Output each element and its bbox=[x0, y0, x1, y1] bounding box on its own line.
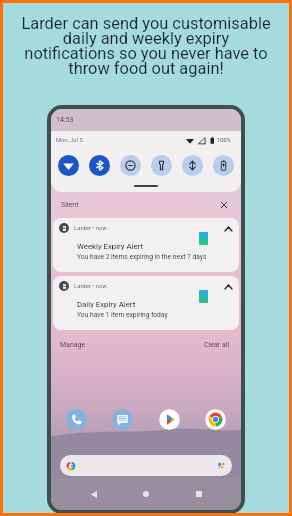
button[interactable]: Chrome bbox=[205, 409, 226, 430]
staticText: Larder • now bbox=[74, 283, 107, 290]
button[interactable]: Collapse notification bbox=[223, 281, 234, 292]
button[interactable]: Larder • now bbox=[53, 276, 239, 330]
button[interactable]: Home bbox=[136, 484, 156, 504]
staticText: You have 2 items expiring in the next 7 … bbox=[77, 253, 207, 261]
staticText: Larder can send you customisable daily a… bbox=[0, 14, 292, 78]
button[interactable]: Collapse notification bbox=[223, 223, 234, 234]
staticText: 14:53 bbox=[56, 116, 74, 124]
staticText: Mon, Jul 5 bbox=[56, 137, 83, 144]
staticText: Manage bbox=[60, 341, 86, 349]
button[interactable]: Search bbox=[60, 455, 232, 476]
staticText: Silent bbox=[61, 201, 79, 209]
staticText: 100% bbox=[217, 137, 232, 144]
button[interactable]: Flashlight bbox=[151, 155, 172, 176]
staticText: You have 1 item expiring today bbox=[77, 311, 168, 319]
button[interactable]: Do not disturb bbox=[120, 155, 141, 176]
button[interactable]: Bluetooth bbox=[89, 155, 110, 176]
button[interactable]: Dismiss silent notifications bbox=[218, 199, 229, 210]
button[interactable]: Auto rotate bbox=[182, 155, 203, 176]
button[interactable]: Larder • now bbox=[53, 218, 239, 272]
button[interactable]: Recent apps bbox=[189, 484, 209, 504]
button[interactable]: Messages bbox=[112, 409, 133, 430]
button[interactable]: Battery saver bbox=[213, 155, 234, 176]
button[interactable]: Wi-Fi bbox=[58, 155, 79, 176]
staticText: Clear all bbox=[204, 341, 230, 349]
button[interactable]: Phone bbox=[66, 409, 87, 430]
button[interactable]: Manage bbox=[59, 340, 87, 350]
button[interactable]: Back bbox=[84, 484, 104, 504]
button[interactable]: Play Store bbox=[159, 409, 180, 430]
staticText: Larder • now bbox=[74, 225, 107, 232]
staticText: Daily Expiry Alert bbox=[77, 300, 136, 309]
button[interactable]: Clear all bbox=[203, 340, 231, 350]
staticText: Weekly Expiry Alert bbox=[77, 242, 143, 251]
